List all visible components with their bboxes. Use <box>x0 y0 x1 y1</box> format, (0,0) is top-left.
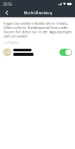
button[interactable]: C <box>0 47 75 58</box>
staticText: Multi-Banking <box>23 10 51 15</box>
button[interactable]: Back <box>0 8 12 17</box>
staticText: 20:56 <box>3 1 12 7</box>
staticText: C <box>5 49 8 56</box>
staticText: verfügbar <box>3 40 18 45</box>
staticText: Fügen Sie weitere Konten Ihrer Finanz-Üb… <box>3 21 71 39</box>
